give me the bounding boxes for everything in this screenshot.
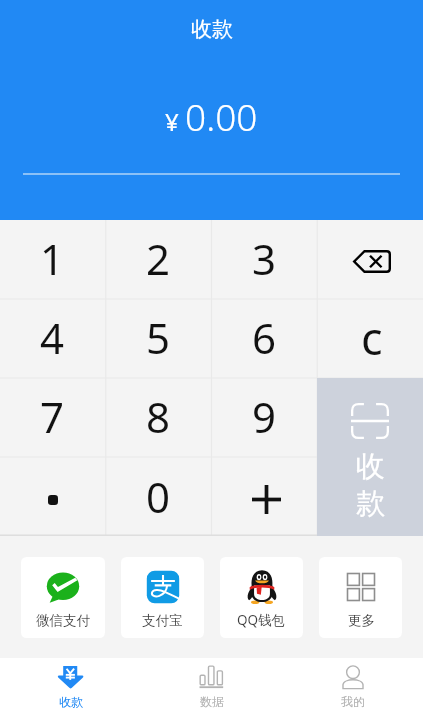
button[interactable]: 支付宝: [121, 557, 204, 638]
staticText: 0.00: [185, 91, 258, 141]
button[interactable]: 5: [105, 299, 211, 378]
button[interactable]: 更多: [319, 557, 402, 638]
button[interactable]: 2: [105, 220, 211, 299]
staticText: 支付宝: [142, 612, 183, 629]
staticText: 5: [146, 309, 171, 366]
button[interactable]: 收: [317, 378, 423, 536]
staticText: 我的: [341, 694, 365, 709]
button[interactable]: 数据: [141, 658, 282, 723]
staticText: 收: [356, 448, 385, 485]
button[interactable]: 1: [0, 220, 105, 299]
button[interactable]: QQ钱包: [220, 557, 303, 638]
button[interactable]: Plus: [211, 457, 317, 536]
staticText: 1: [40, 230, 65, 287]
staticText: 0: [146, 468, 171, 525]
button[interactable]: 7: [0, 378, 105, 457]
staticText: 7: [40, 388, 65, 445]
staticText: 微信支付: [36, 612, 90, 629]
staticText: 2: [146, 230, 171, 287]
staticText: 4: [40, 309, 65, 366]
staticText: 6: [252, 309, 277, 366]
staticText: 3: [252, 230, 277, 287]
staticText: 收款: [191, 16, 233, 42]
button[interactable]: 我的: [282, 658, 423, 723]
button[interactable]: 9: [211, 378, 317, 457]
staticText: ¥: [165, 105, 179, 138]
button[interactable]: 3: [211, 220, 317, 299]
button[interactable]: 0: [105, 457, 211, 536]
staticText: QQ钱包: [237, 611, 286, 629]
button[interactable]: Backspace: [317, 220, 423, 299]
button[interactable]: 4: [0, 299, 105, 378]
staticText: c: [361, 307, 383, 368]
button[interactable]: c: [317, 299, 423, 378]
button[interactable]: 8: [105, 378, 211, 457]
staticText: 款: [356, 485, 385, 522]
staticText: 更多: [348, 612, 375, 629]
button[interactable]: 6: [211, 299, 317, 378]
staticText: 数据: [200, 694, 224, 709]
staticText: 8: [146, 388, 171, 445]
button[interactable]: 收款: [0, 658, 141, 723]
button[interactable]: Decimal point: [0, 457, 105, 536]
staticText: 9: [252, 388, 277, 445]
staticText: 收款: [59, 694, 83, 709]
button[interactable]: 微信支付: [21, 557, 105, 638]
